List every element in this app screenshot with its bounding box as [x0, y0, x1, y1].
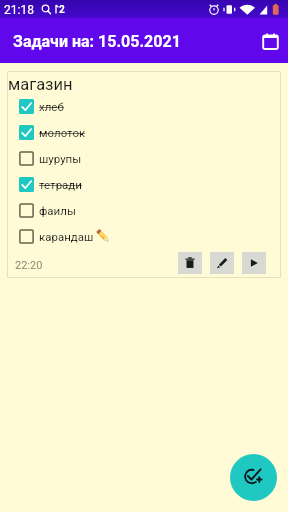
staticText: магазин [8, 75, 73, 94]
staticText: 22:20 [15, 259, 43, 272]
button[interactable]: молоток [7, 119, 281, 145]
staticText: карандаш [39, 230, 94, 243]
button[interactable]: шурупы [7, 145, 281, 171]
button[interactable]: Редактировать [210, 252, 234, 274]
button[interactable]: магазин [7, 71, 281, 278]
button[interactable]: хлеб [7, 93, 281, 119]
button[interactable]: карандаш [7, 223, 281, 249]
staticText: хлеб [39, 100, 64, 113]
button[interactable]: Старт [242, 252, 266, 274]
staticText: 21:18 [4, 3, 34, 17]
staticText: молоток [39, 126, 86, 139]
button[interactable]: фаилы [7, 197, 281, 223]
staticText: 2 [59, 4, 65, 16]
button[interactable]: Добавить задачу [230, 454, 277, 501]
button[interactable]: тетради [7, 171, 281, 197]
staticText: Задачи на: 15.05.2021 [13, 32, 181, 51]
button[interactable]: Удалить [178, 252, 202, 274]
button[interactable]: Выбрать дату [254, 25, 286, 57]
staticText: фаилы [39, 204, 76, 217]
staticText: тетради [39, 178, 82, 191]
staticText: шурупы [39, 152, 82, 165]
